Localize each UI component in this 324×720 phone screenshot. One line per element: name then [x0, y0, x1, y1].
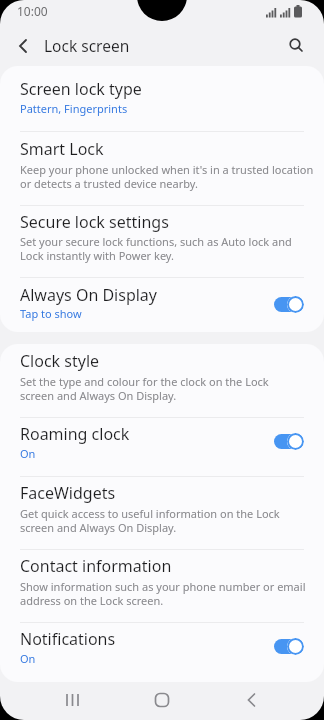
button[interactable]: Smart Lock [0, 131, 324, 205]
button[interactable] [274, 432, 304, 450]
staticText: Keep your phone unlocked when it's in a … [20, 162, 314, 177]
staticText: Pattern, Fingerprints [20, 101, 128, 116]
button[interactable]: Clock style [0, 344, 324, 417]
button[interactable]: Contact information [0, 549, 324, 622]
button[interactable] [282, 32, 312, 60]
staticText: Secure lock settings [20, 211, 169, 233]
button[interactable] [274, 637, 304, 655]
staticText: 10:00 [17, 3, 48, 19]
staticText: Smart Lock [20, 138, 104, 160]
staticText: FaceWidgets [20, 482, 116, 504]
staticText: Show information such as your phone numb… [20, 579, 306, 594]
staticText: On [20, 446, 36, 461]
button[interactable]: Always On Display [0, 277, 324, 332]
staticText: Lock instantly with Power key. [20, 248, 174, 263]
staticText: screen and Always On Display. [20, 520, 177, 535]
staticText: Lock screen [44, 35, 130, 56]
button[interactable]: FaceWidgets [0, 476, 324, 549]
staticText: Screen lock type [20, 78, 142, 100]
staticText: Set your secure lock functions, such as … [20, 234, 292, 249]
staticText: On [20, 651, 36, 666]
staticText: Notifications [20, 628, 116, 650]
button[interactable]: Roaming clock [0, 417, 324, 476]
staticText: Get quick access to useful information o… [20, 506, 280, 521]
button[interactable] [225, 682, 277, 718]
button[interactable] [136, 682, 188, 718]
button[interactable]: Notifications [0, 622, 324, 682]
staticText: address on the Lock screen. [20, 593, 164, 608]
staticText: screen and Always On Display. [20, 388, 177, 403]
staticText: Always On Display [20, 284, 158, 306]
staticText: Roaming clock [20, 423, 130, 445]
button[interactable] [274, 295, 304, 313]
staticText: Clock style [20, 350, 100, 372]
staticText: or detects a trusted device nearby. [20, 176, 198, 191]
button[interactable]: Secure lock settings [0, 205, 324, 277]
button[interactable]: Screen lock type [0, 66, 324, 131]
staticText: Tap to show [20, 306, 82, 321]
staticText: Contact information [20, 555, 172, 577]
button[interactable] [47, 682, 99, 718]
staticText: Set the type and colour for the clock on… [20, 374, 269, 389]
button[interactable] [8, 33, 44, 59]
